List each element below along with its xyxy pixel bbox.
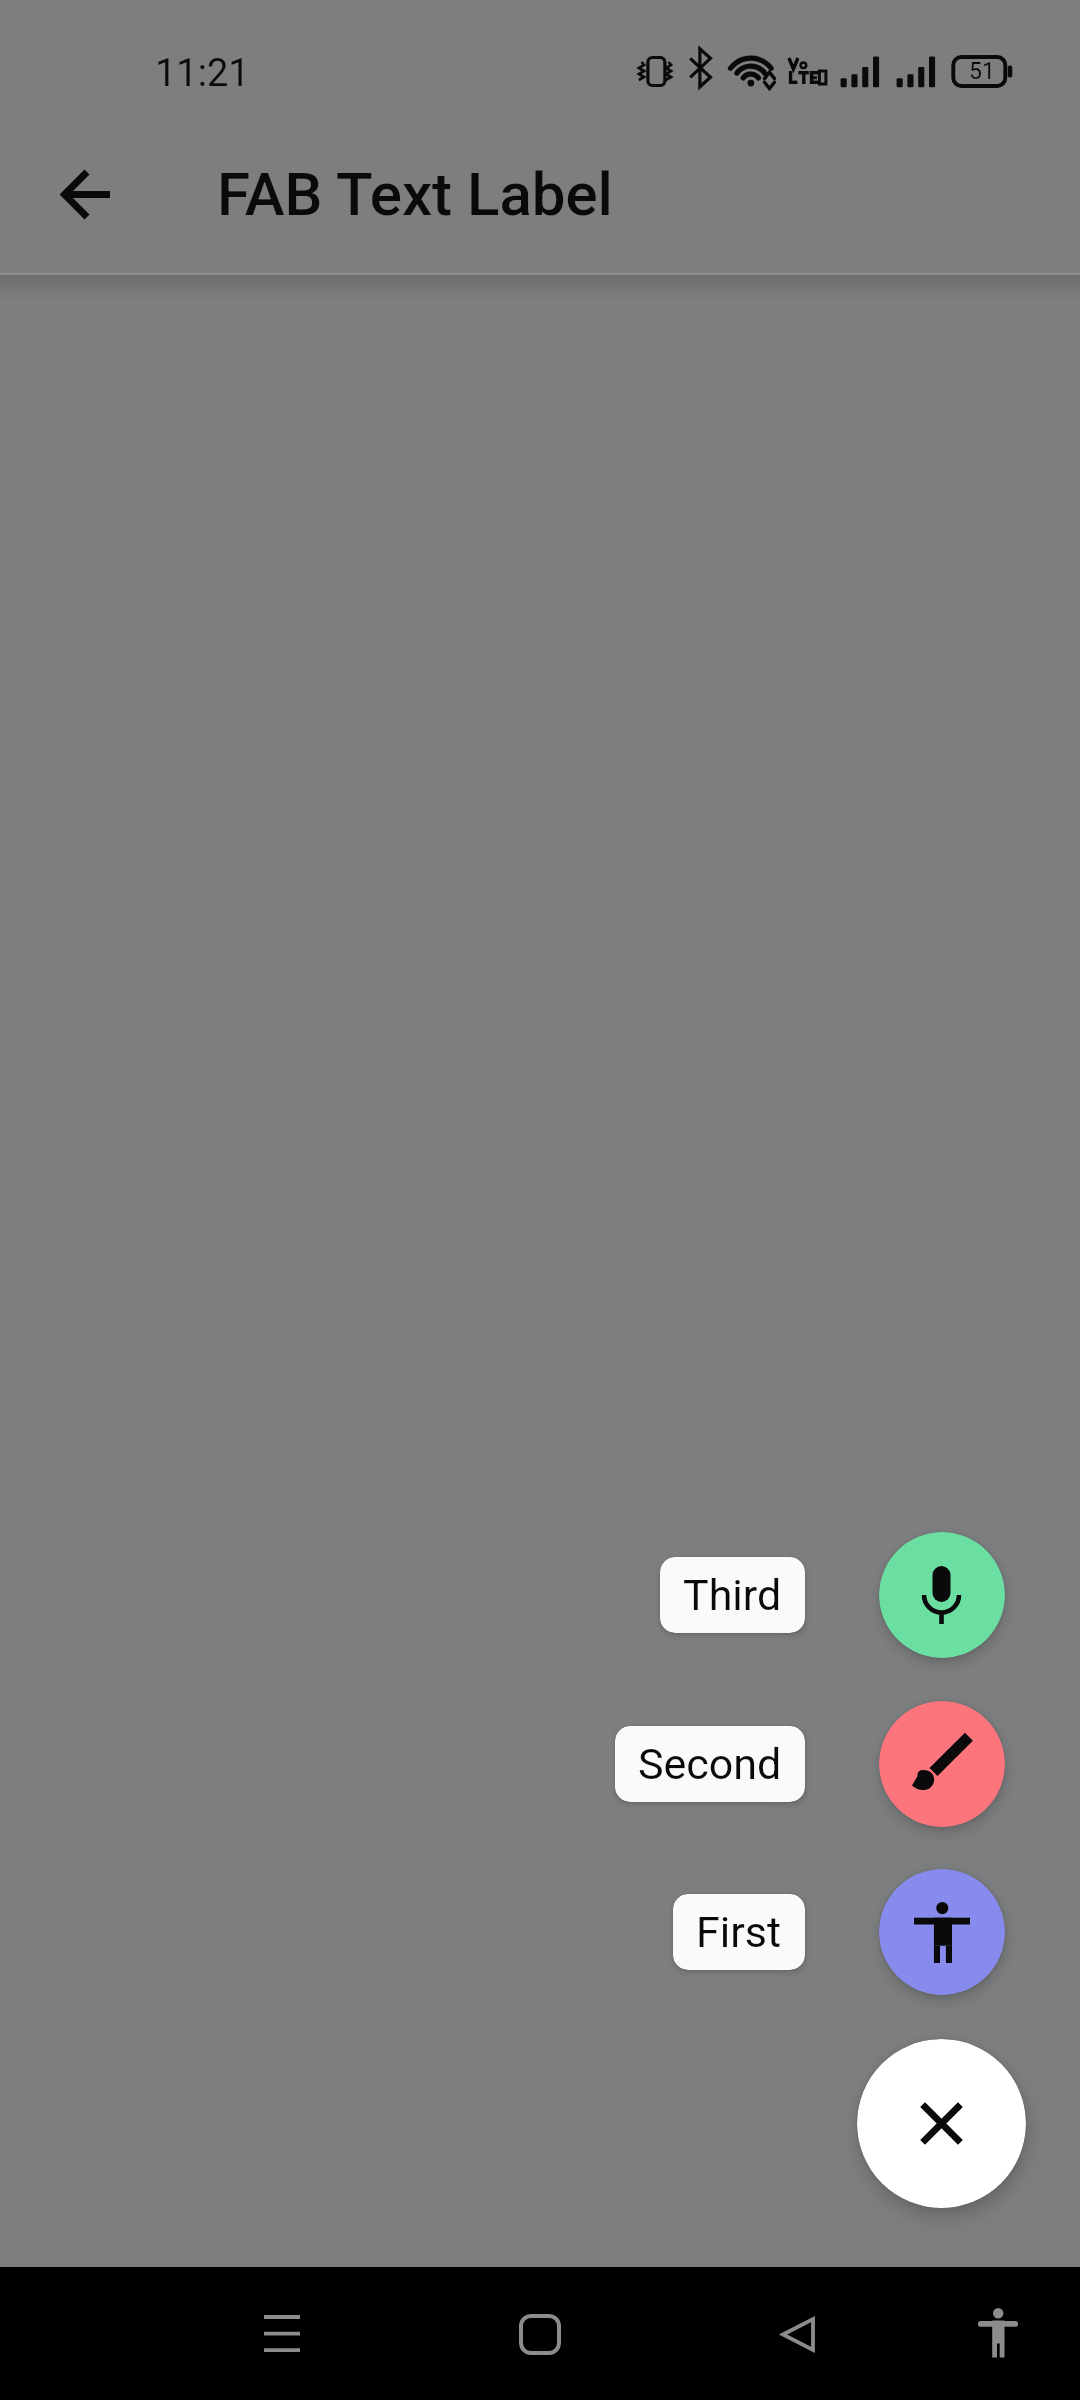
button[interactable]: Third	[660, 1557, 805, 1633]
button[interactable]: Home	[485, 2279, 595, 2389]
staticText: FAB Text Label	[217, 159, 613, 229]
button[interactable]: Second	[879, 1701, 1005, 1827]
staticText: First	[696, 1907, 782, 1957]
button[interactable]: Recent apps	[227, 2279, 337, 2389]
button[interactable]: Third	[879, 1532, 1005, 1658]
button[interactable]: First	[673, 1894, 805, 1970]
staticText: 11:21	[155, 51, 250, 96]
staticText: 51	[969, 58, 995, 85]
staticText: Third	[683, 1570, 782, 1620]
button[interactable]: Second	[615, 1726, 805, 1802]
button[interactable]: First	[879, 1869, 1005, 1995]
button[interactable]: Close menu	[857, 2039, 1026, 2208]
button[interactable]: Back	[743, 2279, 853, 2389]
staticText: Second	[638, 1739, 782, 1789]
button[interactable]: Accessibility	[953, 2288, 1043, 2378]
button[interactable]: Navigate up	[26, 135, 146, 255]
